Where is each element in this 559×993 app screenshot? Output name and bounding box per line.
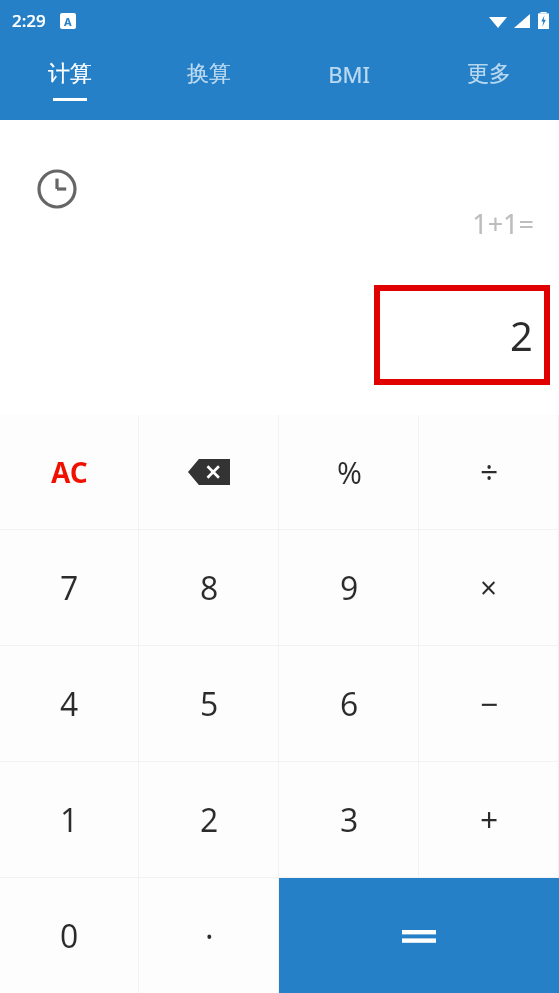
button[interactable]: · [139,878,279,993]
staticText: · [205,914,214,958]
button[interactable]: − [419,646,559,761]
staticText: 7 [60,566,79,610]
button[interactable]: 更多 [419,40,559,120]
staticText: 2:29 [12,9,46,32]
button[interactable]: 2 [139,762,279,877]
staticText: BMI [328,59,370,89]
button[interactable]: Backspace [139,415,279,529]
button[interactable]: History [29,161,85,217]
staticText: 3 [340,798,359,842]
staticText: 1+1= [472,205,534,242]
staticText: 更多 [467,60,511,88]
button[interactable]: ÷ [419,415,559,529]
button[interactable]: 0 [0,878,139,993]
staticText: AC [51,453,88,491]
button[interactable]: 7 [0,530,139,645]
staticText: 4 [60,682,79,726]
button[interactable]: 1 [0,762,139,877]
staticText: 8 [200,566,219,610]
button[interactable]: 换算 [139,40,279,120]
button[interactable] [279,878,559,993]
button[interactable]: 计算 [0,40,139,120]
button[interactable]: 8 [139,530,279,645]
staticText: 0 [60,914,79,958]
staticText: 9 [340,566,359,610]
button[interactable]: 5 [139,646,279,761]
button[interactable]: 3 [279,762,419,877]
staticText: 6 [340,682,359,726]
button[interactable]: % [279,415,419,529]
staticText: − [480,682,499,726]
staticText: 2 [200,798,219,842]
staticText: % [337,452,362,493]
staticText: 换算 [187,60,231,88]
staticText: 5 [200,682,219,726]
button[interactable]: 9 [279,530,419,645]
button[interactable]: BMI [279,40,419,120]
button[interactable]: × [419,530,559,645]
staticText: ÷ [480,450,499,494]
staticText: 2 [510,308,533,362]
staticText: A [64,14,72,29]
staticText: × [480,567,498,608]
staticText: 1 [60,798,79,842]
button[interactable]: AC [0,415,139,529]
button[interactable]: 4 [0,646,139,761]
button[interactable]: + [419,762,559,877]
staticText: + [480,798,499,842]
button[interactable]: 6 [279,646,419,761]
staticText: 计算 [48,60,92,88]
